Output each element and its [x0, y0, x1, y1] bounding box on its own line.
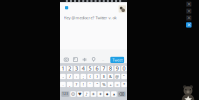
button[interactable]: . — [60, 82, 66, 87]
staticText: . — [62, 82, 63, 87]
staticText: 6 — [95, 65, 98, 72]
button[interactable]: ! — [80, 82, 86, 87]
button[interactable]: ( — [87, 74, 93, 79]
button[interactable]: & — [108, 74, 113, 79]
staticText: - — [62, 74, 63, 79]
button[interactable]: “ — [94, 82, 100, 87]
button[interactable]: Location — [91, 57, 96, 62]
button[interactable]: ▲ — [111, 91, 117, 97]
button[interactable]: ' — [87, 82, 93, 87]
button[interactable]: ✶ — [97, 91, 103, 97]
staticText: ' — [90, 82, 91, 87]
staticText: ) — [96, 74, 97, 79]
button[interactable]: ♪ — [84, 91, 89, 97]
button[interactable]: 2 — [67, 66, 72, 71]
staticText: & — [109, 74, 112, 79]
staticText: 123 — [62, 92, 68, 96]
button[interactable]: Profile photo — [119, 5, 126, 12]
button[interactable]: Twitter — [186, 22, 192, 28]
button[interactable]: = — [114, 82, 120, 87]
staticText: ● — [106, 92, 108, 95]
staticText: ✕ — [187, 15, 191, 21]
staticText: ▲ — [113, 92, 115, 95]
button[interactable]: Add — [65, 6, 68, 9]
staticText: " — [123, 74, 125, 79]
button[interactable]: Finder — [186, 1, 192, 7]
staticText: ✶ — [99, 92, 102, 96]
button[interactable]: Photos — [73, 57, 78, 62]
staticText: 8 — [109, 65, 112, 72]
button[interactable]: 123 — [61, 91, 69, 97]
staticText: Tweet — [112, 57, 122, 62]
button[interactable]: ● — [104, 91, 110, 97]
staticText: “ — [96, 82, 97, 87]
button[interactable]: Music — [186, 8, 192, 14]
button[interactable]: Mail — [186, 15, 192, 21]
staticText: : — [76, 74, 77, 79]
button[interactable]: 0 — [121, 66, 127, 71]
staticText: ✕ — [187, 22, 191, 28]
button[interactable]: ☀ — [91, 91, 96, 97]
button[interactable]: ♥ — [77, 91, 83, 97]
staticText: @ — [115, 74, 119, 79]
button[interactable]: / — [67, 74, 72, 79]
button[interactable]: @ — [114, 74, 120, 79]
button[interactable]: 1 — [60, 66, 66, 71]
staticText: ? — [75, 82, 77, 87]
staticText: ·· — [102, 58, 104, 63]
button[interactable]: GIF — [82, 57, 87, 62]
staticText: 5 — [89, 65, 92, 72]
staticText: ( — [90, 74, 91, 79]
button[interactable]: " — [121, 74, 127, 79]
button[interactable]: 7 — [101, 66, 106, 71]
staticText: 2 — [68, 65, 71, 72]
button[interactable]: 9 — [114, 66, 120, 71]
staticText: ♥ — [78, 92, 82, 96]
staticText: 4 — [82, 65, 85, 72]
button[interactable]: Camera — [64, 57, 69, 62]
button[interactable]: ; — [80, 74, 86, 79]
staticText: ♪ — [85, 92, 88, 96]
button[interactable]: 5 — [87, 66, 93, 71]
button[interactable]: 6 — [94, 66, 100, 71]
staticText: ☀ — [91, 92, 95, 96]
staticText: , — [69, 82, 70, 87]
staticText: * — [123, 82, 125, 87]
button[interactable]: * — [121, 82, 127, 87]
staticText: + — [109, 82, 111, 87]
staticText: ⌫ — [119, 92, 125, 96]
button[interactable]: 3 — [74, 66, 79, 71]
button[interactable]: : — [74, 74, 79, 79]
button[interactable]: ☺ — [70, 91, 76, 97]
button[interactable]: % — [101, 82, 106, 87]
staticText: / — [69, 74, 70, 79]
staticText: ; — [83, 74, 84, 79]
button[interactable]: 4 — [80, 66, 86, 71]
staticText: = — [116, 82, 118, 87]
staticText: 1 — [61, 65, 64, 72]
staticText: 9 — [116, 65, 119, 72]
staticText: 0 — [123, 65, 126, 72]
button[interactable]: $ — [101, 74, 106, 79]
staticText: ✕ — [187, 8, 191, 14]
staticText: 7 — [102, 65, 105, 72]
button[interactable]: ? — [74, 82, 79, 87]
staticText: Hey @mediocre? Twitter v. ok — [63, 15, 116, 20]
staticText: ☺ — [71, 92, 75, 96]
staticText: % — [102, 82, 105, 87]
staticText: ! — [83, 82, 84, 87]
button[interactable]: ) — [94, 74, 100, 79]
staticText: ✕ — [187, 1, 191, 7]
button[interactable]: ⌫ — [118, 91, 126, 97]
staticText: $ — [103, 74, 105, 79]
button[interactable]: + — [108, 82, 113, 87]
button[interactable]: 8 — [108, 66, 113, 71]
button[interactable]: - — [60, 74, 66, 79]
button[interactable]: , — [67, 82, 72, 87]
staticText: 3 — [75, 65, 78, 72]
button[interactable]: Tweet — [110, 57, 124, 63]
